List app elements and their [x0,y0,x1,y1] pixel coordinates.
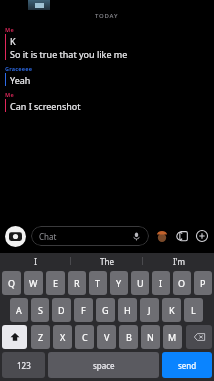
staticText: G [102,304,109,316]
button[interactable]: N [141,325,160,349]
staticText: send [178,360,197,371]
staticText: I [159,277,163,289]
button[interactable]: K [162,298,181,322]
staticText: C [82,331,88,343]
staticText: I [34,256,37,267]
button[interactable]: V [97,325,116,349]
staticText: K [10,35,16,47]
staticText: U [137,277,144,289]
staticText: Yeah [10,74,31,86]
button[interactable]: X [53,325,72,349]
staticText: space [93,360,115,371]
staticText: R [74,277,80,289]
button[interactable]: Bitmoji [155,229,169,243]
button[interactable]: T [89,271,107,295]
staticText: Chat [39,231,132,242]
staticText: I'm [173,256,185,267]
staticText: W [29,277,38,289]
staticText: Z [38,331,44,343]
button[interactable]: Backspace [186,325,212,349]
button[interactable]: 123 [2,352,45,378]
staticText: F [81,304,86,316]
staticText: O [178,277,186,289]
button[interactable]: P [194,271,212,295]
button[interactable]: send [162,352,212,378]
button[interactable]: O [173,271,191,295]
staticText: H [124,304,131,316]
staticText: Graceeee [5,65,33,72]
staticText: 123 [17,360,31,371]
staticText: A [16,304,22,316]
button[interactable]: Can I screenshot [0,99,214,112]
staticText: Me [5,26,14,33]
button[interactable]: L [184,298,203,322]
button[interactable]: I'm [143,253,214,269]
staticText: So it is true that you like me [10,48,128,60]
staticText: M [168,331,177,343]
button[interactable]: Chat [31,226,149,246]
button[interactable]: G [96,298,115,322]
staticText: The [100,256,114,267]
staticText: Me [5,91,14,98]
staticText: Q [8,277,16,289]
staticText: B [126,331,132,343]
button[interactable]: Snap preview [28,0,50,10]
button[interactable]: Z [31,325,50,349]
button[interactable]: I [0,253,70,269]
staticText: D [58,304,65,316]
staticText: K [169,304,175,316]
button[interactable]: D [52,298,71,322]
staticText: V [104,331,110,343]
staticText: S [38,304,43,316]
button[interactable]: A [10,298,28,322]
button[interactable]: So it is true that you like me [0,47,214,60]
button[interactable]: F [74,298,93,322]
button[interactable]: B [119,325,138,349]
button[interactable]: I [152,271,170,295]
staticText: Can I screenshot [10,100,81,112]
button[interactable]: M [163,325,182,349]
staticText: P [200,277,206,289]
button[interactable]: Stickers [175,229,189,243]
button[interactable]: Y [110,271,128,295]
button[interactable]: H [118,298,137,322]
staticText: X [60,331,66,343]
button[interactable]: W [24,271,43,295]
button[interactable]: space [48,352,159,378]
button[interactable]: Camera [5,226,26,247]
button[interactable]: R [68,271,86,295]
button[interactable]: Shift [2,325,27,349]
staticText: T [95,277,101,289]
button[interactable]: S [31,298,49,322]
button[interactable]: C [75,325,94,349]
button[interactable]: J [140,298,159,322]
staticText: Y [116,277,122,289]
staticText: N [147,331,154,343]
staticText: L [191,304,196,316]
button[interactable]: Yeah [0,73,214,86]
staticText: J [148,304,151,316]
button[interactable]: The [71,253,142,269]
button[interactable]: E [46,271,65,295]
staticText: E [53,277,59,289]
button[interactable]: Q [2,271,21,295]
button[interactable]: K [0,34,214,47]
button[interactable]: Add [195,229,209,243]
button[interactable]: U [131,271,149,295]
staticText: TODAY [95,12,119,20]
